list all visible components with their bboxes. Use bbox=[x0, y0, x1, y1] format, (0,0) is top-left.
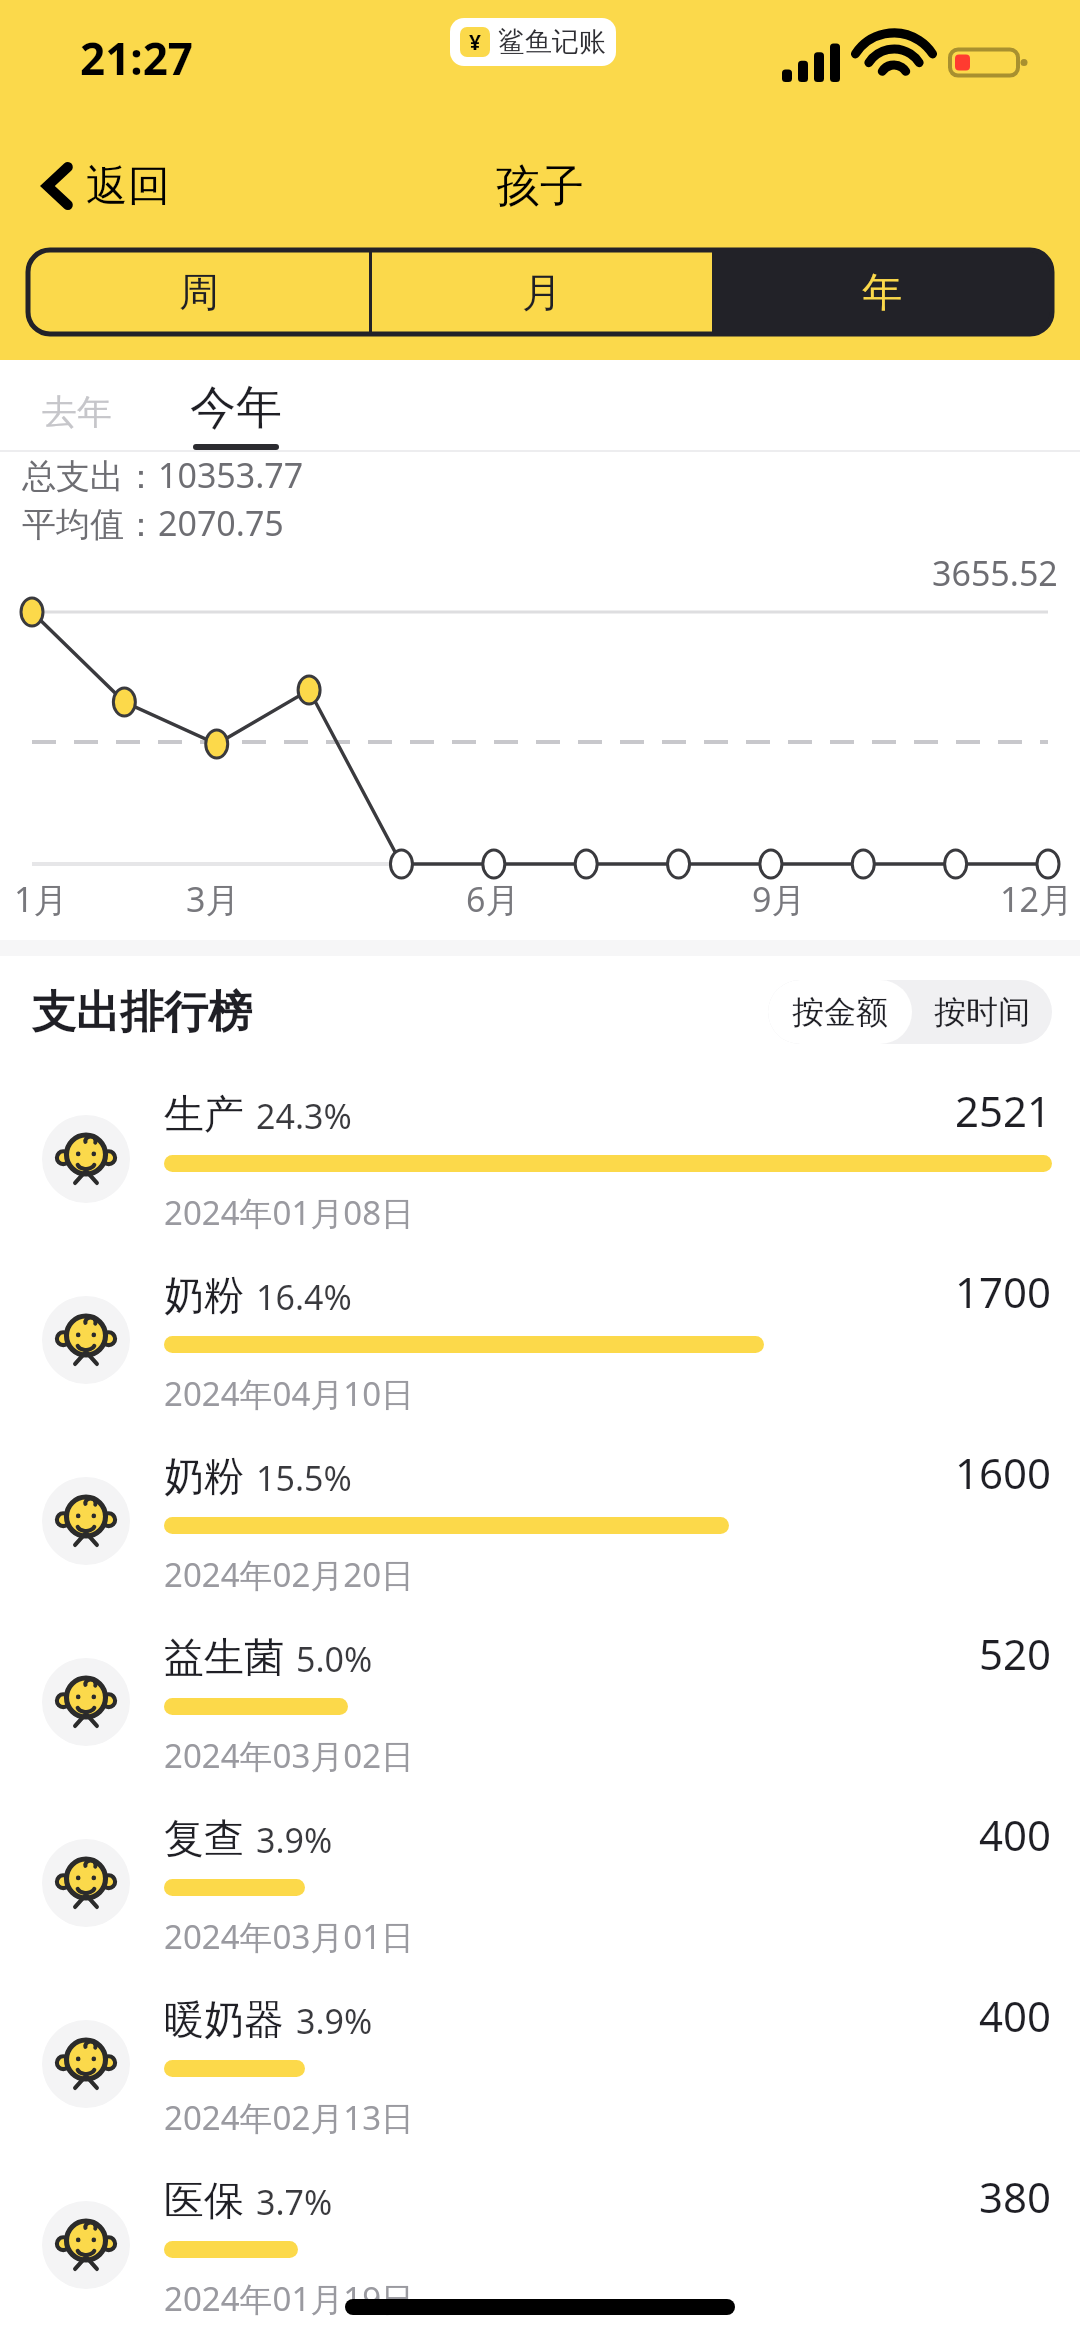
staticText: 12月 bbox=[1000, 876, 1073, 922]
button[interactable]: 月 bbox=[372, 250, 712, 334]
staticText: 1700 bbox=[955, 1263, 1052, 1320]
button[interactable]: 暖奶器 bbox=[0, 1973, 1080, 2154]
staticText: 奶粉 bbox=[164, 1451, 244, 1501]
button[interactable]: 奶粉 bbox=[0, 1430, 1080, 1611]
staticText: 16.4% bbox=[256, 1274, 352, 1320]
staticText: 1600 bbox=[955, 1444, 1052, 1501]
staticText: 今年 bbox=[190, 379, 282, 437]
staticText: 医保 bbox=[164, 2175, 244, 2225]
button[interactable]: 年 bbox=[712, 250, 1052, 334]
button[interactable]: 医保 bbox=[0, 2154, 1080, 2335]
staticText: 3月 bbox=[186, 876, 240, 922]
button[interactable]: 奶粉 bbox=[0, 1249, 1080, 1430]
staticText: 益生菌 bbox=[164, 1632, 284, 1682]
staticText: 9月 bbox=[752, 876, 806, 922]
staticText: 6月 bbox=[466, 876, 520, 922]
button[interactable]: 周 bbox=[28, 250, 369, 334]
button[interactable]: ¥ bbox=[450, 18, 616, 66]
staticText: 3655.52 bbox=[932, 550, 1058, 596]
staticText: 周 bbox=[179, 267, 219, 317]
staticText: 3.9% bbox=[256, 1817, 333, 1863]
staticText: 3.7% bbox=[256, 2179, 333, 2225]
staticText: 孩子 bbox=[0, 159, 1080, 214]
staticText: 支出排行榜 bbox=[32, 985, 252, 1040]
staticText: 2024年02月13日 bbox=[164, 2095, 415, 2140]
button[interactable]: 益生菌 bbox=[0, 1611, 1080, 1792]
staticText: 24.3% bbox=[256, 1093, 352, 1139]
staticText: 2521 bbox=[955, 1082, 1052, 1139]
staticText: 2024年03月01日 bbox=[164, 1914, 415, 1959]
staticText: 2024年02月20日 bbox=[164, 1552, 415, 1597]
staticText: 去年 bbox=[42, 390, 112, 434]
button[interactable]: 复查 bbox=[0, 1792, 1080, 1973]
button[interactable]: 去年 bbox=[14, 374, 140, 450]
staticText: 21:27 bbox=[80, 28, 194, 88]
button[interactable]: 按时间 bbox=[912, 980, 1052, 1044]
staticText: 400 bbox=[979, 1806, 1052, 1863]
button[interactable]: 生产 bbox=[0, 1068, 1080, 1249]
staticText: 3.9% bbox=[296, 1998, 373, 2044]
staticText: 2024年01月08日 bbox=[164, 1190, 415, 1235]
staticText: 月 bbox=[522, 267, 562, 317]
staticText: 按时间 bbox=[934, 992, 1030, 1032]
staticText: ¥ bbox=[469, 28, 482, 57]
staticText: 400 bbox=[979, 1987, 1052, 2044]
staticText: 复查 bbox=[164, 1813, 244, 1863]
button[interactable]: 返回 bbox=[30, 146, 184, 226]
staticText: 380 bbox=[979, 2168, 1052, 2225]
staticText: 2024年04月10日 bbox=[164, 1371, 415, 1416]
staticText: 总支出：10353.77 bbox=[22, 452, 304, 498]
staticText: 2024年03月02日 bbox=[164, 1733, 415, 1778]
staticText: 年 bbox=[862, 267, 902, 317]
button[interactable]: 今年 bbox=[178, 379, 294, 450]
staticText: 2024年01月19日 bbox=[164, 2276, 415, 2321]
staticText: 5.0% bbox=[296, 1636, 373, 1682]
staticText: 按金额 bbox=[792, 992, 888, 1032]
button[interactable]: 按金额 bbox=[768, 980, 912, 1044]
staticText: 奶粉 bbox=[164, 1270, 244, 1320]
staticText: 520 bbox=[979, 1625, 1052, 1682]
staticText: 1月 bbox=[14, 876, 68, 922]
staticText: 平均值：2070.75 bbox=[22, 500, 284, 546]
staticText: 15.5% bbox=[256, 1455, 352, 1501]
staticText: 生产 bbox=[164, 1089, 244, 1139]
staticText: 鲨鱼记账 bbox=[498, 25, 606, 59]
staticText: 暖奶器 bbox=[164, 1994, 284, 2044]
staticText: 返回 bbox=[86, 160, 170, 213]
